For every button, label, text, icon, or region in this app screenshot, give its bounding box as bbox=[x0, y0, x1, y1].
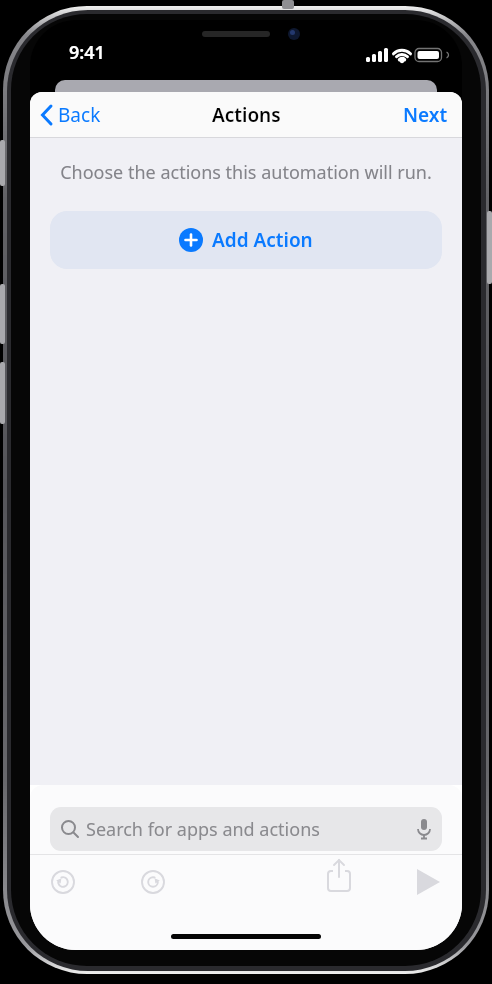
staticText: Actions bbox=[212, 102, 281, 128]
button[interactable]: Next bbox=[403, 102, 448, 128]
button[interactable]: Back bbox=[40, 102, 101, 128]
staticText: Back bbox=[58, 102, 101, 128]
staticText: Search for apps and actions bbox=[86, 817, 320, 842]
staticText: 9:41 bbox=[69, 40, 105, 65]
button[interactable]: Search for apps and actions bbox=[50, 807, 442, 851]
button[interactable]: Add Action bbox=[50, 211, 442, 269]
staticText: Add Action bbox=[212, 227, 313, 253]
staticText: Choose the actions this automation will … bbox=[46, 160, 446, 185]
